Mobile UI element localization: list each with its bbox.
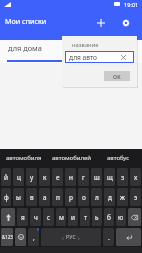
staticText: л — [95, 193, 99, 202]
button[interactable]: ж — [117, 188, 128, 206]
staticText: ч — [34, 213, 38, 222]
button[interactable]: ‹ — [41, 228, 101, 246]
button[interactable]: щ — [104, 168, 115, 186]
staticText: й — [4, 173, 8, 182]
staticText: ы — [16, 193, 21, 202]
button[interactable]: , — [28, 228, 39, 246]
button[interactable]: . — [103, 228, 114, 246]
button[interactable]: н — [65, 168, 76, 186]
staticText: х — [134, 173, 138, 182]
button[interactable]: Shift — [1, 208, 15, 226]
button[interactable]: ч — [30, 208, 41, 226]
button[interactable]: э — [130, 188, 141, 206]
button[interactable]: для авто — [65, 51, 134, 63]
staticText: в — [30, 193, 34, 202]
button[interactable]: х — [130, 168, 141, 186]
button[interactable]: з — [117, 168, 128, 186]
staticText: к — [43, 173, 47, 182]
button[interactable]: т — [80, 208, 90, 226]
staticText: д — [108, 193, 112, 202]
button[interactable]: о — [78, 188, 89, 206]
button[interactable]: л — [91, 188, 102, 206]
button[interactable]: ы — [13, 188, 24, 206]
button[interactable]: я — [17, 208, 28, 226]
staticText: Мои списки — [5, 16, 47, 26]
staticText: я — [21, 213, 25, 222]
staticText: автомобилей — [52, 154, 91, 162]
staticText: автомобиля — [6, 154, 42, 162]
staticText: щ — [107, 173, 113, 182]
button[interactable]: автомобиля — [0, 149, 48, 167]
staticText: т — [84, 213, 87, 222]
button[interactable]: м — [56, 208, 66, 226]
staticText: н — [69, 173, 73, 182]
button[interactable]: Backspace — [128, 208, 141, 226]
staticText: 19:01 — [124, 1, 139, 9]
button[interactable]: в — [26, 188, 37, 206]
button[interactable]: с — [43, 208, 54, 226]
staticText: для дома — [8, 43, 42, 53]
staticText: ь — [95, 213, 99, 222]
button[interactable]: Add list — [91, 13, 111, 33]
staticText: OK — [113, 73, 121, 80]
staticText: б — [107, 213, 111, 222]
button[interactable]: Emoji — [15, 228, 26, 246]
staticText: о — [82, 193, 86, 202]
button[interactable]: для дома — [0, 40, 63, 63]
staticText: РУС — [66, 234, 76, 241]
staticText: для авто — [69, 53, 97, 62]
staticText: &123 — [2, 234, 13, 240]
button[interactable]: OK — [104, 71, 130, 81]
staticText: з — [121, 173, 125, 182]
button[interactable]: &123 — [1, 228, 13, 246]
button[interactable]: е — [52, 168, 63, 186]
button[interactable]: ю — [116, 208, 126, 226]
staticText: с — [47, 213, 51, 222]
button[interactable]: автобус — [95, 149, 142, 167]
button[interactable]: ф — [1, 188, 11, 206]
staticText: э — [134, 193, 138, 202]
button[interactable]: р — [65, 188, 76, 206]
staticText: п — [56, 193, 60, 202]
button[interactable]: ц — [13, 168, 24, 186]
staticText: . — [108, 233, 110, 242]
staticText: г — [82, 173, 85, 182]
staticText: ж — [120, 193, 125, 202]
button[interactable]: Settings — [116, 13, 136, 33]
staticText: автобус — [107, 154, 130, 162]
button[interactable]: ш — [91, 168, 102, 186]
staticText: ‹ — [62, 234, 64, 241]
button[interactable]: г — [78, 168, 89, 186]
staticText: м — [59, 213, 64, 222]
staticText: р — [69, 193, 73, 202]
staticText: ф — [4, 193, 9, 202]
staticText: название — [72, 41, 99, 49]
staticText: ш — [94, 173, 100, 182]
button[interactable]: й — [1, 168, 11, 186]
staticText: › — [78, 234, 80, 241]
button[interactable]: Enter — [116, 228, 141, 246]
staticText: ц — [17, 173, 21, 182]
button[interactable]: а — [39, 188, 50, 206]
button[interactable]: ь — [92, 208, 102, 226]
staticText: е — [56, 173, 60, 182]
staticText: ю — [118, 213, 124, 222]
staticText: у — [30, 173, 34, 182]
button[interactable]: автомобилей — [48, 149, 95, 167]
button[interactable]: д — [104, 188, 115, 206]
button[interactable]: и — [68, 208, 78, 226]
staticText: , — [33, 233, 35, 242]
button[interactable]: у — [26, 168, 37, 186]
staticText: и — [71, 213, 75, 222]
staticText: а — [43, 193, 47, 202]
button[interactable]: б — [104, 208, 114, 226]
button[interactable]: п — [52, 188, 63, 206]
button[interactable]: к — [39, 168, 50, 186]
